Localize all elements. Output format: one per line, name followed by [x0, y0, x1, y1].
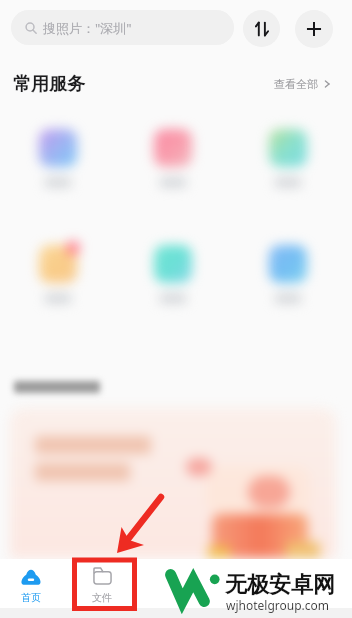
staticText: 搜照片："深圳": [43, 19, 132, 37]
staticText: 首页: [21, 591, 41, 604]
button[interactable]: Sort: [243, 10, 280, 47]
staticText: 常用服务: [13, 73, 85, 96]
button[interactable]: 查看全部: [274, 77, 331, 91]
staticText: wjhotelgroup.com: [226, 597, 330, 613]
button[interactable]: 搜照片："深圳": [11, 10, 234, 45]
button[interactable]: 首页: [8, 560, 54, 606]
staticText: 文件: [92, 591, 112, 604]
button[interactable]: Add: [295, 10, 333, 48]
button[interactable]: 文件: [79, 560, 125, 606]
staticText: 无极安卓网: [225, 571, 335, 599]
staticText: 查看全部: [274, 77, 318, 91]
